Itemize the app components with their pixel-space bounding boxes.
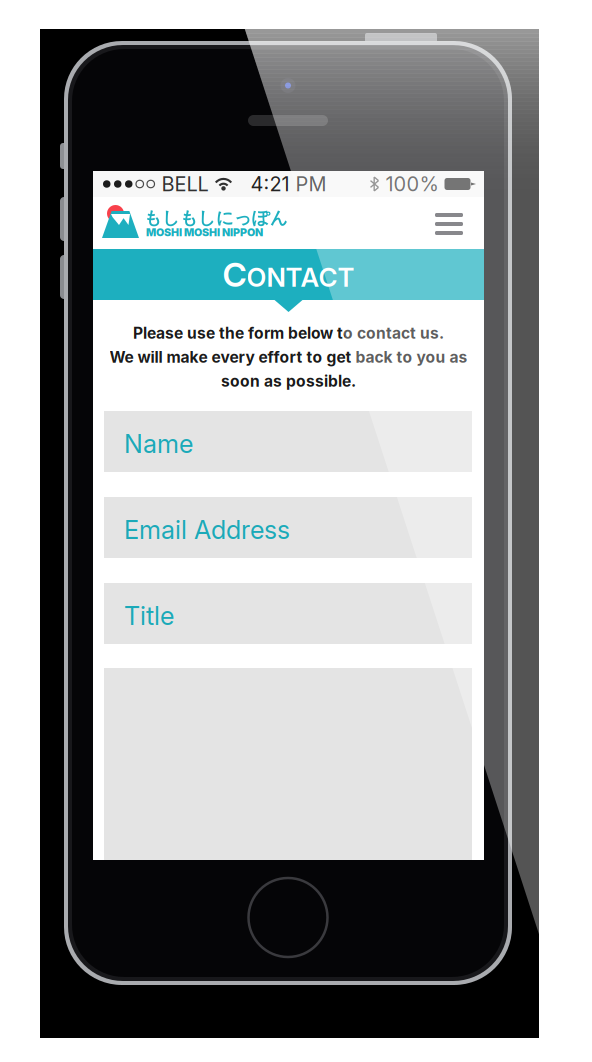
staticText: soon as possible.	[221, 372, 356, 390]
staticText: Please use the form below to contact us.	[133, 324, 444, 342]
staticText: 4:21 PM	[250, 172, 326, 196]
staticText: Email Address	[124, 514, 290, 545]
staticText: Name	[124, 428, 193, 459]
button[interactable]: Menu	[426, 205, 471, 241]
staticText: C	[222, 254, 246, 295]
staticText: ONTACT	[246, 261, 354, 293]
staticText: Title	[124, 600, 174, 631]
staticText: BELL	[161, 172, 208, 196]
staticText: もしもしにっぽん	[144, 207, 288, 229]
button[interactable]: Name	[104, 411, 472, 472]
staticText: 100%	[385, 172, 438, 196]
button[interactable]: Title	[104, 583, 472, 644]
staticText: MOSHI MOSHI NIPPON	[146, 226, 263, 239]
button[interactable]: Email Address	[104, 497, 472, 558]
staticText: We will make every effort to get back to…	[109, 348, 467, 366]
